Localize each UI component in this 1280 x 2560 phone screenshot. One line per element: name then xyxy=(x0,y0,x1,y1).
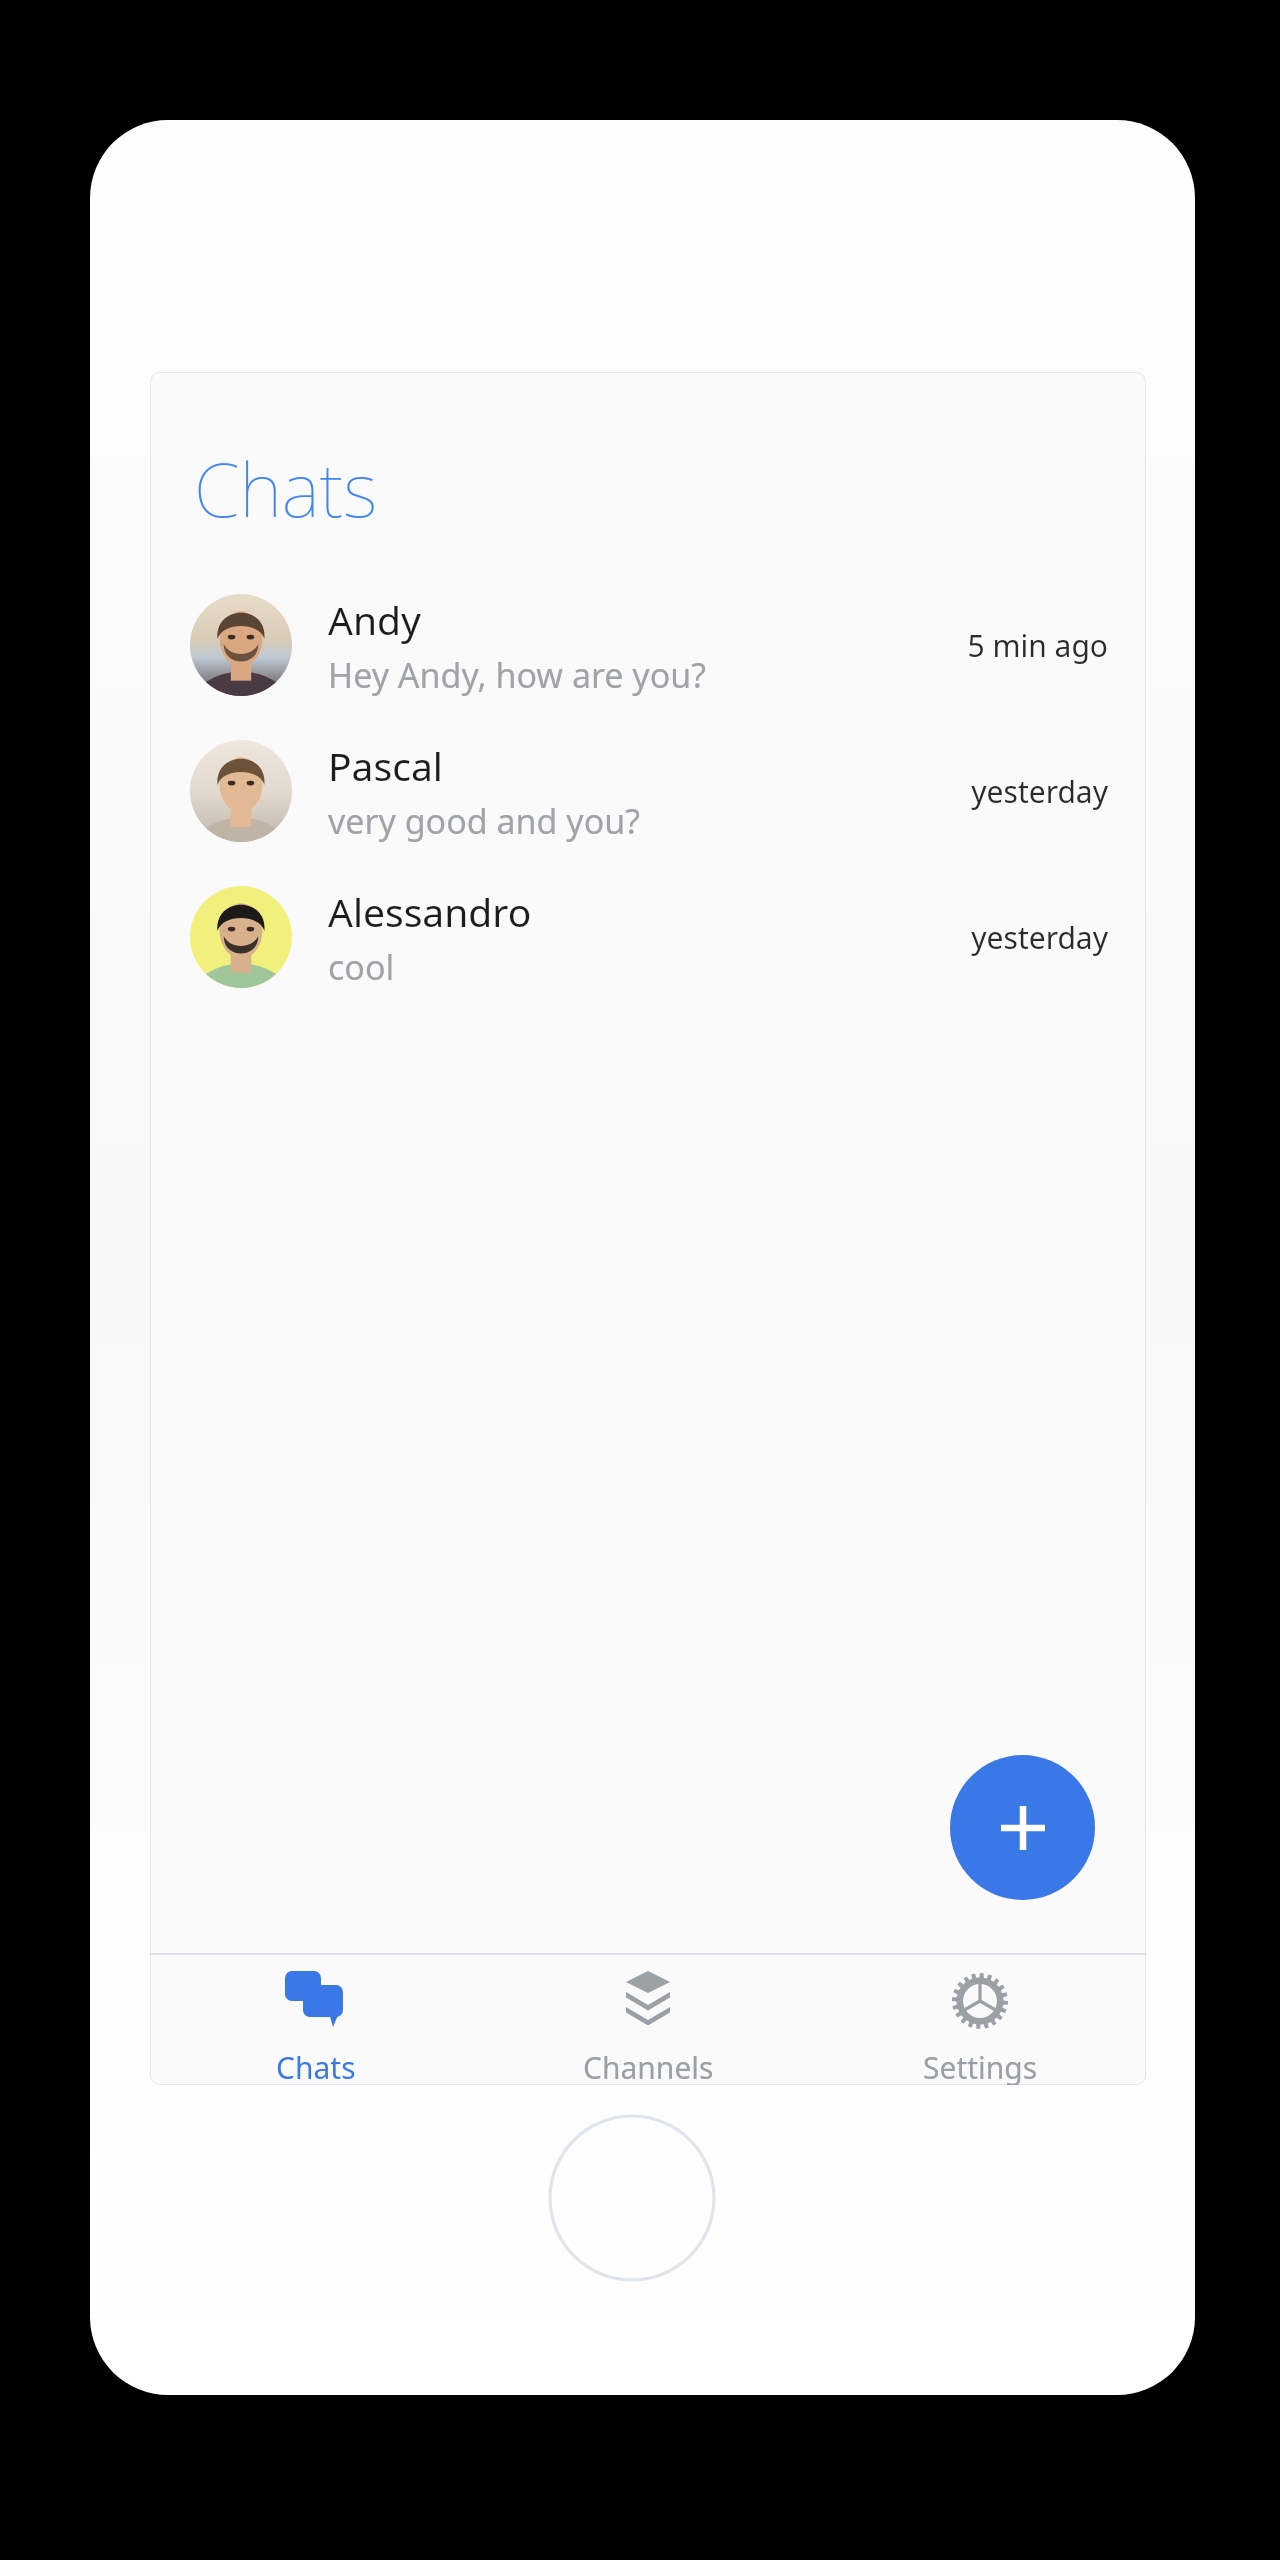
staticText: Chats xyxy=(276,2047,356,2085)
staticText: very good and you? xyxy=(328,798,640,844)
staticText: yesterday xyxy=(971,917,1108,958)
staticText: yesterday xyxy=(971,771,1108,812)
staticText: Settings xyxy=(923,2047,1038,2085)
staticText: Pascal xyxy=(328,739,443,792)
staticText: Hey Andy, how are you? xyxy=(328,652,707,698)
staticText: Alessandro xyxy=(328,885,532,938)
staticText: 5 min ago xyxy=(967,625,1108,666)
button[interactable]: Channels xyxy=(482,1955,814,2085)
button[interactable]: Chats xyxy=(150,1955,482,2085)
staticText: Chats xyxy=(194,438,378,539)
staticText: cool xyxy=(328,944,395,990)
staticText: Andy xyxy=(328,593,421,646)
button[interactable]: Settings xyxy=(814,1955,1146,2085)
button[interactable]: Alessandro xyxy=(150,864,1146,1010)
button[interactable]: Pascal xyxy=(150,718,1146,864)
button[interactable]: New chat xyxy=(950,1755,1095,1900)
button[interactable]: Andy xyxy=(150,572,1146,718)
staticText: Channels xyxy=(583,2047,714,2085)
